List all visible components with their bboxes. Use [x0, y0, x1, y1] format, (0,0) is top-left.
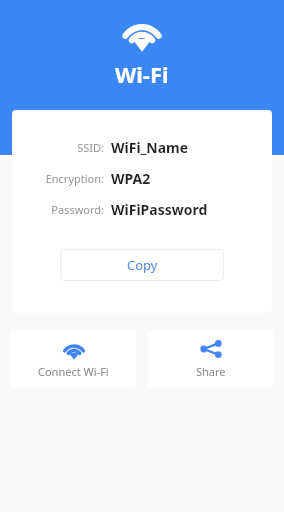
staticText: Encryption:	[20, 171, 104, 186]
button[interactable]: Share	[148, 330, 274, 388]
button[interactable]: Connect Wi-Fi	[10, 330, 136, 388]
staticText: WPA2	[111, 169, 151, 188]
staticText: Share	[196, 364, 226, 379]
button[interactable]: Copy	[60, 249, 224, 281]
staticText: Connect Wi-Fi	[38, 364, 109, 379]
staticText: Wi-Fi	[115, 59, 169, 89]
staticText: Copy	[127, 256, 158, 274]
staticText: Password:	[20, 202, 104, 217]
staticText: WiFiPassword	[111, 200, 208, 219]
staticText: SSID:	[20, 140, 104, 155]
staticText: WiFi_Name	[111, 138, 189, 157]
